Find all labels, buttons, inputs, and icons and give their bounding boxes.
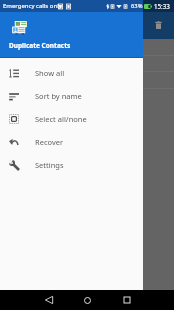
staticText: Select all/none xyxy=(35,114,87,124)
staticText: Recover xyxy=(35,137,64,147)
button[interactable]: Recents xyxy=(107,290,146,310)
button[interactable]: Delete xyxy=(148,15,168,35)
staticText: Show all xyxy=(35,68,65,78)
staticText: 63% xyxy=(131,2,143,10)
button[interactable]: Show all xyxy=(0,61,143,84)
staticText: Settings xyxy=(35,160,64,170)
button[interactable]: Sort by name xyxy=(0,84,143,107)
button[interactable]: Select all/none xyxy=(0,107,143,130)
staticText: 15:33 xyxy=(154,2,170,10)
button[interactable]: Back xyxy=(29,290,68,310)
button[interactable]: Settings xyxy=(0,153,143,176)
staticText: Sort by name xyxy=(35,91,82,101)
staticText: Duplicate Contacts xyxy=(9,41,71,50)
button[interactable]: Home xyxy=(68,290,107,310)
staticText: Emergency calls only xyxy=(3,2,62,10)
button[interactable]: Recover xyxy=(0,130,143,153)
